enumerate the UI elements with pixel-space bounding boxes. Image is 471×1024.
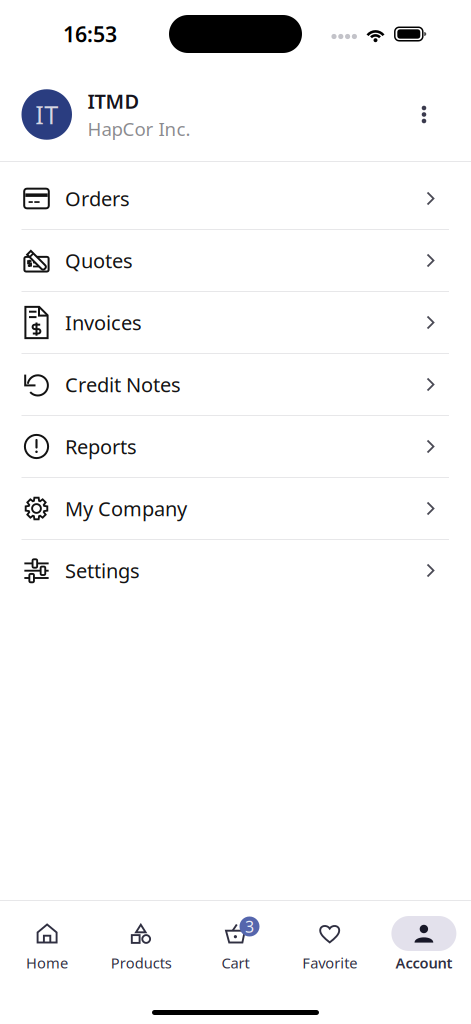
staticText: Invoices — [65, 309, 142, 336]
staticText: Orders — [65, 185, 130, 212]
button[interactable]: Invoices — [0, 292, 471, 354]
staticText: Quotes — [65, 247, 133, 274]
button[interactable]: My Company — [0, 478, 471, 540]
staticText: My Company — [65, 495, 187, 522]
button[interactable]: Orders — [0, 168, 471, 230]
button[interactable]: 3 — [188, 916, 283, 972]
staticText: 16:53 — [63, 20, 117, 48]
staticText: IT — [35, 98, 58, 131]
staticText: Settings — [65, 557, 140, 584]
staticText: ITMD — [87, 88, 139, 114]
staticText: Reports — [65, 433, 137, 460]
button[interactable]: Account — [377, 916, 471, 972]
staticText: Credit Notes — [65, 371, 181, 398]
button[interactable]: IT — [0, 68, 471, 161]
button[interactable]: Home — [0, 916, 94, 972]
button[interactable]: Credit Notes — [0, 354, 471, 416]
button[interactable]: Reports — [0, 416, 471, 478]
staticText: 3 — [245, 916, 254, 937]
button[interactable]: Products — [94, 916, 188, 972]
staticText: Favorite — [302, 953, 357, 972]
staticText: Products — [111, 953, 172, 972]
button[interactable]: Favorite — [283, 916, 377, 972]
staticText: Cart — [221, 953, 249, 972]
staticText: Account — [395, 953, 452, 972]
button[interactable]: Settings — [0, 540, 471, 601]
staticText: Home — [26, 953, 68, 972]
button[interactable]: Quotes — [0, 230, 471, 292]
staticText: HapCor Inc. — [87, 116, 190, 141]
